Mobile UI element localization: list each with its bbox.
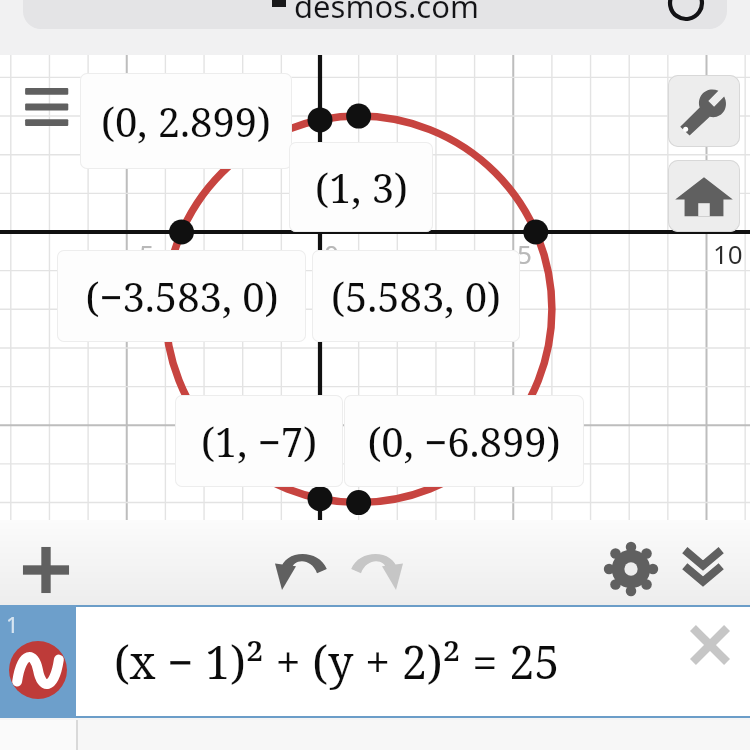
staticText: 0 [324,236,339,271]
staticText: (x − 1)² + (y + 2)² = 25 [114,631,560,692]
button[interactable]: Reload [665,0,707,24]
button[interactable]: (0, −6.899) [344,395,584,487]
button[interactable]: Redo [340,534,410,604]
button[interactable]: Undo [268,534,338,604]
button[interactable]: (x − 1)² + (y + 2)² = 25 [76,607,750,716]
button[interactable]: 1 [0,605,750,718]
button[interactable]: (0, 2.899) [80,73,292,169]
button[interactable]: (1, −7) [175,395,343,487]
staticText: desmos.com [294,0,479,27]
staticText: (0, 2.899) [101,94,271,148]
staticText: (0, −6.899) [367,414,561,468]
button[interactable]: Menu [22,88,74,128]
button[interactable]: Graph settings [668,75,740,147]
staticText: (5.583, 0) [331,269,501,323]
button[interactable]: Add expression [10,534,82,606]
staticText: (1, −7) [201,414,317,468]
staticText: -5 [131,236,155,271]
button[interactable]: (1, 3) [289,142,433,232]
button[interactable]: desmos.com [23,0,727,29]
button[interactable]: Collapse [668,534,738,604]
staticText: (1, 3) [315,160,408,214]
button[interactable]: Settings [596,534,666,604]
button[interactable]: (−3.583, 0) [57,250,306,342]
button[interactable]: 1 [0,605,76,718]
button[interactable]: (5.583, 0) [312,250,520,342]
button[interactable]: Default zoom [668,160,740,232]
staticText: 5 [517,236,532,271]
staticText: 1 [6,609,19,639]
staticText: 10 [713,236,743,271]
staticText: (−3.583, 0) [85,269,279,323]
button[interactable]: Delete expression [688,623,732,667]
